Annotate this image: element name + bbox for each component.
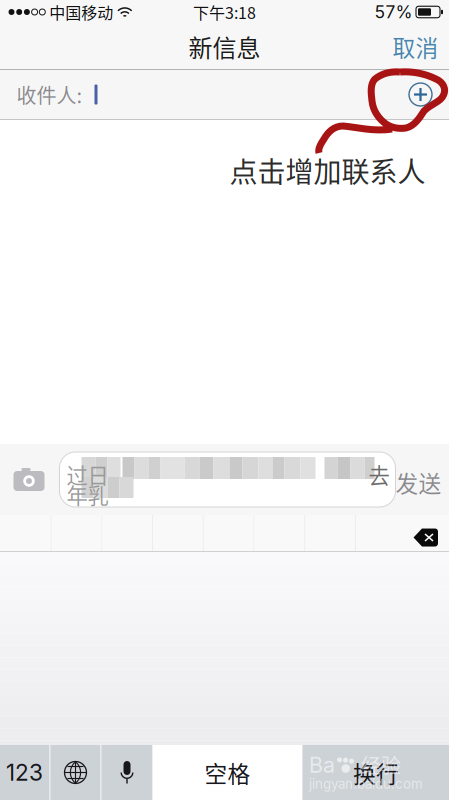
- button[interactable]: Dictation: [101, 745, 152, 800]
- button[interactable]: Switch keyboard: [50, 745, 100, 800]
- staticText: jingyan.baidu.com: [309, 776, 423, 792]
- button[interactable]: Camera: [0, 444, 59, 515]
- staticText: 收件人:: [16, 80, 82, 109]
- staticText: 去: [368, 459, 389, 490]
- staticText: 57%: [374, 1, 412, 22]
- button[interactable]: Add contact: [407, 70, 449, 119]
- staticText: 下午3:18: [193, 0, 256, 24]
- staticText: 点击增加联系人: [229, 150, 425, 190]
- staticText: 新信息: [188, 29, 260, 64]
- staticText: 年乳: [66, 479, 108, 510]
- staticText: 中国移动: [49, 0, 113, 24]
- button[interactable]: 取消: [392, 24, 449, 69]
- staticText: 过日: [66, 459, 108, 490]
- staticText: 空格: [204, 756, 250, 789]
- staticText: 发送: [395, 466, 441, 499]
- staticText: 换行: [353, 756, 399, 789]
- button[interactable]: 发送: [395, 444, 449, 515]
- button[interactable]: 过日: [59, 444, 395, 515]
- button[interactable]: 123: [0, 745, 49, 800]
- staticText: Ba: [309, 752, 335, 778]
- staticText: 123: [6, 759, 43, 786]
- button[interactable]: 换行: [302, 745, 449, 800]
- staticText: 经验: [361, 750, 401, 779]
- button[interactable]: Delete: [413, 515, 449, 551]
- button[interactable]: 空格: [152, 745, 302, 800]
- staticText: 取消: [392, 30, 438, 63]
